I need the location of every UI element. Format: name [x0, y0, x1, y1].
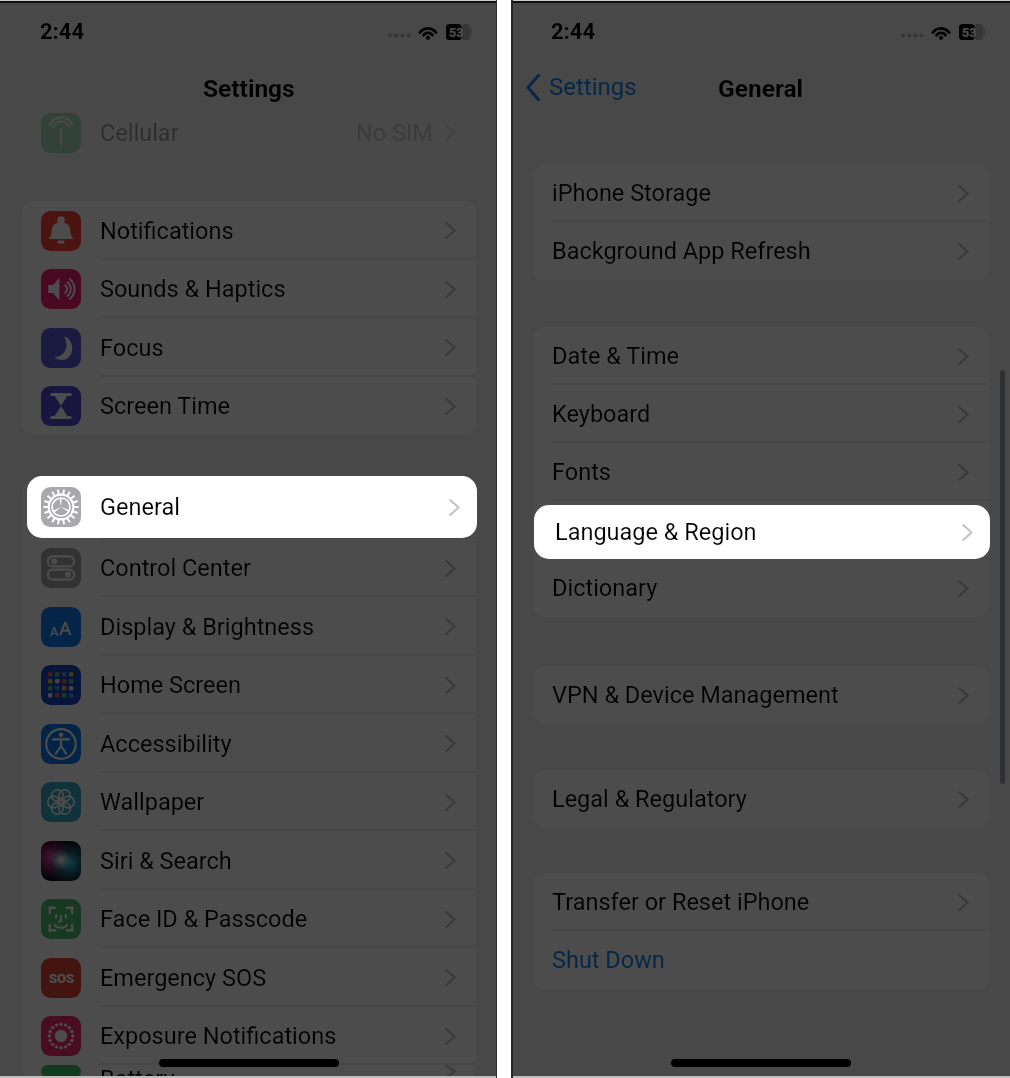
button[interactable]: Back to Settings [526, 73, 637, 101]
button[interactable]: Notifications [22, 201, 476, 260]
button[interactable]: Legal & Regulatory [533, 770, 989, 828]
button[interactable]: Screen Time [22, 377, 476, 435]
button[interactable]: Shut Down [533, 931, 989, 989]
staticText: 2:44 [40, 19, 85, 45]
staticText: Face ID & Passcode [100, 905, 308, 933]
button[interactable]: Fonts [533, 443, 989, 501]
button[interactable]: Exposure Notifications [22, 1007, 476, 1065]
staticText: Sounds & Haptics [100, 275, 286, 303]
staticText: Focus [100, 334, 164, 362]
button[interactable]: Date & Time [533, 327, 989, 385]
staticText: Legal & Regulatory [552, 785, 747, 813]
staticText: Accessibility [100, 730, 232, 758]
staticText: 53 [449, 25, 464, 40]
staticText: Fonts [552, 458, 611, 486]
button[interactable]: Language & Region [533, 501, 989, 559]
staticText: A [50, 624, 59, 639]
staticText: General [718, 74, 804, 103]
button[interactable]: A [22, 597, 476, 656]
staticText: Emergency SOS [100, 964, 267, 992]
staticText: A [59, 617, 72, 639]
button[interactable]: Wallpaper [22, 773, 476, 831]
button[interactable]: Dictionary [533, 559, 989, 617]
staticText: Language & Region [552, 516, 754, 544]
staticText: No SIM [356, 119, 433, 147]
button[interactable]: Language & Region [534, 505, 990, 559]
staticText: Home Screen [100, 671, 241, 699]
staticText: Cellular [100, 119, 179, 147]
button[interactable]: Control Center [22, 539, 476, 597]
staticText: SOS [49, 971, 74, 986]
staticText: Screen Time [100, 392, 231, 420]
button[interactable]: General [22, 480, 476, 539]
staticText: Background App Refresh [552, 237, 811, 265]
staticText: Keyboard [552, 400, 651, 428]
staticText: VPN & Device Management [552, 681, 839, 709]
button[interactable]: Accessibility [22, 714, 476, 773]
staticText: Language & Region [555, 518, 757, 546]
button[interactable]: Sounds & Haptics [22, 260, 476, 318]
staticText: Siri & Search [100, 847, 232, 875]
staticText: Wallpaper [100, 788, 205, 816]
button[interactable]: VPN & Device Management [533, 666, 989, 724]
button[interactable]: Transfer or Reset iPhone [533, 873, 989, 931]
staticText: Settings [203, 74, 295, 103]
button[interactable]: Battery [22, 1065, 476, 1078]
staticText: Date & Time [552, 342, 679, 370]
staticText: Display & Brightness [100, 613, 315, 641]
staticText: Shut Down [552, 946, 665, 974]
button[interactable]: iPhone Storage [533, 164, 989, 222]
button[interactable]: Background App Refresh [533, 222, 989, 280]
staticText: General [100, 493, 180, 521]
staticText: 2:44 [551, 19, 596, 45]
button[interactable]: Home Screen [22, 656, 476, 714]
staticText: Control Center [100, 554, 251, 582]
button[interactable]: General [27, 476, 477, 538]
staticText: Notifications [100, 217, 234, 245]
staticText: iPhone Storage [552, 179, 711, 207]
staticText: 53 [962, 25, 977, 40]
staticText: Dictionary [552, 574, 658, 602]
button[interactable]: Face ID & Passcode [22, 890, 476, 948]
staticText: General [100, 496, 180, 524]
staticText: Exposure Notifications [100, 1022, 337, 1050]
button[interactable]: Focus [22, 318, 476, 377]
button[interactable]: Keyboard [533, 385, 989, 443]
button[interactable]: Siri & Search [22, 831, 476, 890]
button[interactable]: SOS [22, 948, 476, 1007]
staticText: Settings [549, 73, 637, 101]
staticText: Transfer or Reset iPhone [552, 888, 810, 916]
staticText: Battery [100, 1065, 175, 1078]
